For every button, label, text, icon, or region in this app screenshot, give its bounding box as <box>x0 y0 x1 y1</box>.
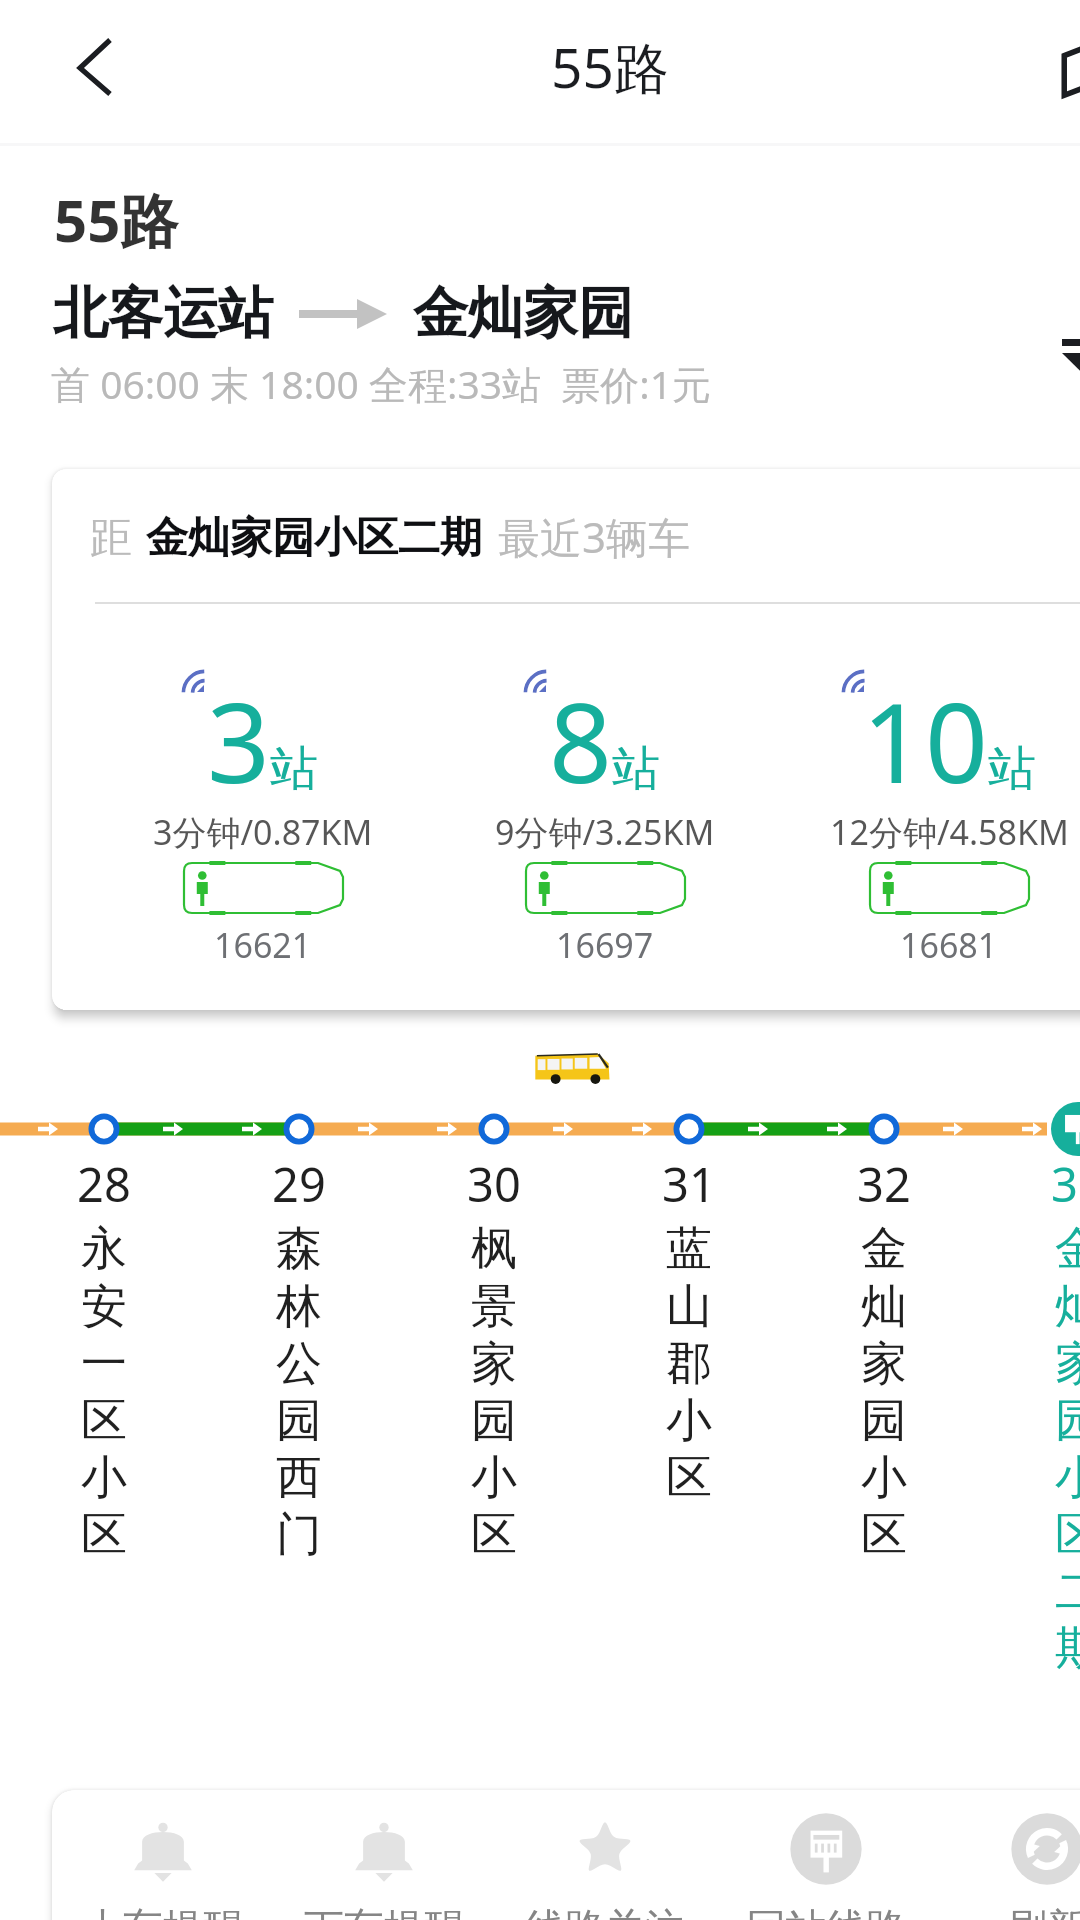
staticText: 站 <box>270 739 318 799</box>
button[interactable]: 刷新 <box>936 1790 1080 1920</box>
button[interactable]: Back <box>30 0 160 146</box>
staticText: 3 <box>207 665 270 815</box>
staticText: 永 安 一 区 小 区 <box>81 1220 127 1563</box>
button[interactable]: 线路关注 <box>494 1790 715 1920</box>
staticText: 16681 <box>900 922 998 968</box>
button[interactable]: 回站线路 <box>715 1790 936 1920</box>
button[interactable]: Current station <box>1051 1102 1080 1156</box>
staticText: 距 <box>90 512 132 565</box>
staticText: 线路关注 <box>525 1903 685 1920</box>
button[interactable]: 3 <box>92 665 434 815</box>
staticText: 枫 景 家 园 小 区 <box>471 1220 517 1563</box>
staticText: 下车提醒 <box>304 1903 464 1920</box>
button[interactable]: 31 <box>592 1152 786 1506</box>
button[interactable]: 10 <box>778 665 1080 815</box>
staticText: 29 <box>272 1152 326 1216</box>
staticText: 首 06:00 末 18:00 全程:33站 票价:1元 <box>51 357 712 410</box>
staticText: 33 <box>1051 1152 1080 1216</box>
staticText: 16697 <box>556 922 654 968</box>
staticText: 金 灿 家 园 小 区 <box>861 1220 907 1563</box>
button[interactable]: 32 <box>787 1152 981 1563</box>
button[interactable]: 距 <box>52 469 1080 1010</box>
staticText: 10 <box>862 665 988 815</box>
staticText: 55路 <box>54 180 179 259</box>
button[interactable]: 8 <box>434 665 776 815</box>
staticText: 12分钟/4.58KM <box>830 809 1069 855</box>
button[interactable]: 上车提醒 <box>52 1790 273 1920</box>
staticText: 32 <box>857 1152 911 1216</box>
staticText: 蓝 山 郡 小 区 <box>666 1220 712 1506</box>
staticText: 3分钟/0.87KM <box>153 809 373 855</box>
button[interactable]: 28 <box>7 1152 201 1563</box>
staticText: 31 <box>662 1152 716 1216</box>
staticText: 30 <box>467 1152 521 1216</box>
staticText: 上车提醒 <box>83 1903 243 1920</box>
staticText: 28 <box>77 1152 131 1216</box>
button[interactable]: 29 <box>202 1152 396 1563</box>
staticText: 55路 <box>551 29 669 104</box>
staticText: 8 <box>549 665 612 815</box>
staticText: 站 <box>988 739 1036 799</box>
staticText: 金 灿 家 园 小 区 二 期 <box>1055 1220 1080 1677</box>
staticText: 北客运站 <box>53 279 273 348</box>
button[interactable]: 30 <box>397 1152 591 1563</box>
button[interactable]: 下车提醒 <box>273 1790 494 1920</box>
staticText: 最近3辆车 <box>498 508 691 565</box>
staticText: 回站线路 <box>746 1903 906 1920</box>
staticText: 16621 <box>214 922 312 968</box>
staticText: 站 <box>612 739 660 799</box>
button[interactable]: Map <box>1030 0 1080 146</box>
button[interactable]: Reverse direction <box>1035 300 1080 430</box>
staticText: 金灿家园 <box>413 279 633 348</box>
staticText: 金灿家园小区二期 <box>146 512 482 565</box>
staticText: 9分钟/3.25KM <box>495 809 715 855</box>
staticText: 森 林 公 园 西 门 <box>276 1220 322 1563</box>
staticText: 刷新 <box>1007 1903 1080 1920</box>
